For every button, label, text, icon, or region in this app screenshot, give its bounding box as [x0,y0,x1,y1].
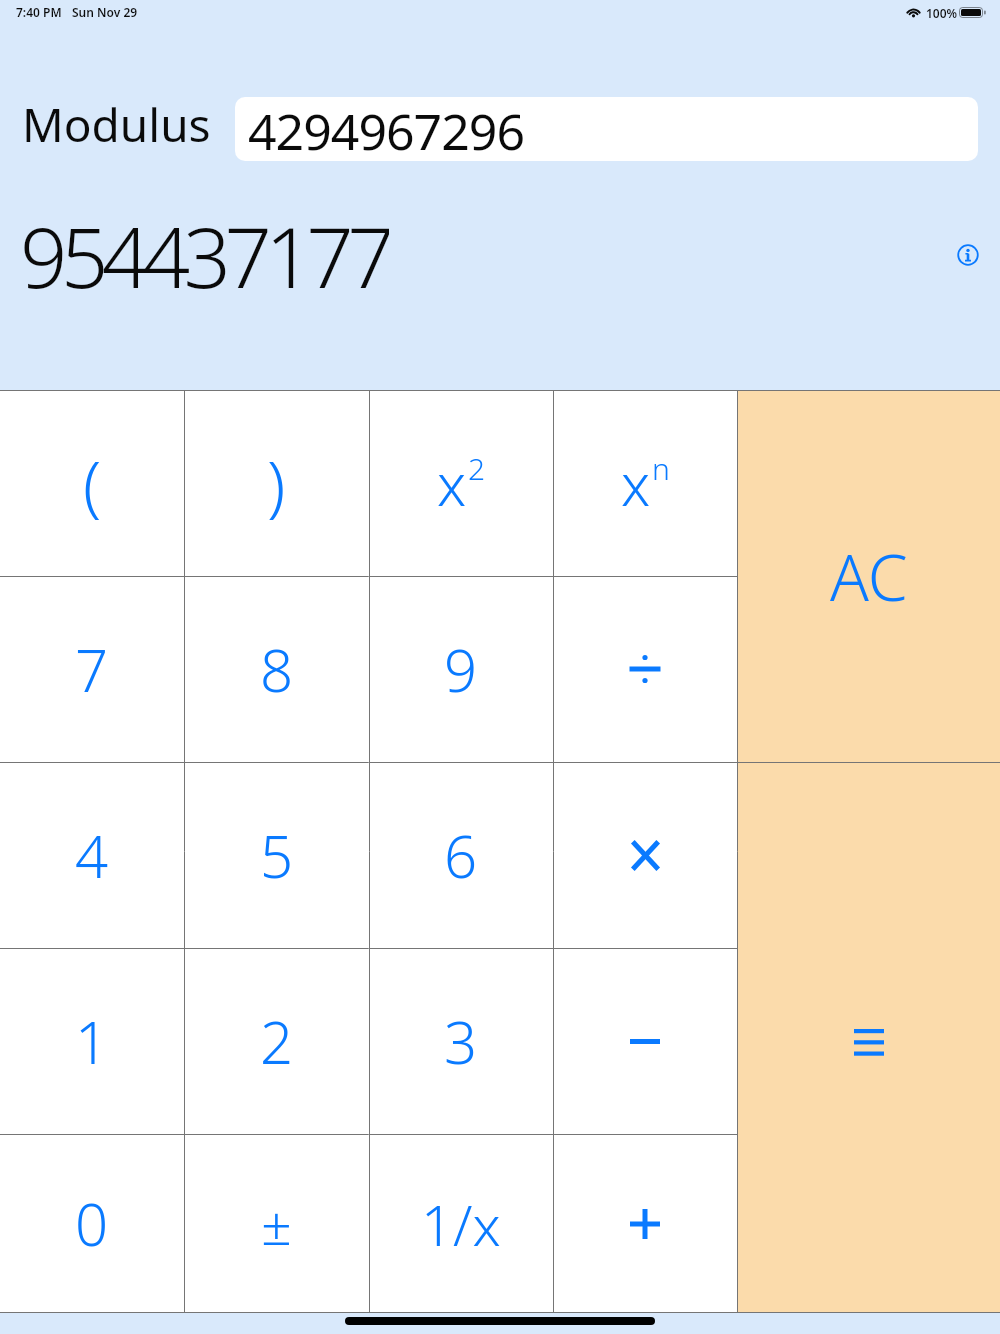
staticText: Modulus [22,93,211,156]
button[interactable] [553,762,737,948]
staticText: ( [83,438,102,528]
button[interactable]: x [369,390,553,576]
staticText: 1/x [421,1186,501,1262]
button[interactable]: 4294967296 [235,97,978,161]
staticText: 6 [444,816,478,895]
staticText: 2 [260,1002,294,1081]
button[interactable]: ( [0,390,184,576]
button[interactable]: 2 [184,948,369,1134]
button[interactable]: 7 [0,576,184,762]
staticText: 7:40 PM [16,4,62,20]
button[interactable] [553,576,737,762]
staticText: 0 [75,1184,109,1263]
button[interactable]: 1/x [369,1134,553,1313]
button[interactable]: 9 [369,576,553,762]
staticText: 3 [444,1002,478,1081]
staticText: 7 [75,630,109,709]
button[interactable] [737,762,1000,1313]
staticText: x [621,444,651,523]
staticText: 954437177 [20,199,389,289]
staticText: 2 [468,448,486,489]
button[interactable]: 1 [0,948,184,1134]
staticText: AC [830,533,908,620]
button[interactable]: 5 [184,762,369,948]
staticText: ) [267,438,286,528]
button[interactable]: 6 [369,762,553,948]
button[interactable] [553,1134,737,1313]
button[interactable] [946,233,990,277]
staticText: 5 [260,816,294,895]
button[interactable]: ± [184,1134,369,1313]
staticText: 9 [444,630,478,709]
staticText: 8 [260,630,294,709]
button[interactable]: 4 [0,762,184,948]
button[interactable]: 3 [369,948,553,1134]
button[interactable]: AC [737,390,1000,762]
staticText: x [437,444,467,523]
staticText: Sun Nov 29 [72,4,138,20]
button[interactable]: 0 [0,1134,184,1313]
staticText: ± [261,1187,292,1261]
staticText: 1 [75,1002,109,1081]
staticText: 4 [75,816,109,895]
staticText: 100% [926,5,958,21]
button[interactable] [553,948,737,1134]
staticText: 4294967296 [248,97,524,161]
button[interactable]: ) [184,390,369,576]
staticText: n [652,448,670,489]
button[interactable]: x [553,390,737,576]
button[interactable]: 8 [184,576,369,762]
